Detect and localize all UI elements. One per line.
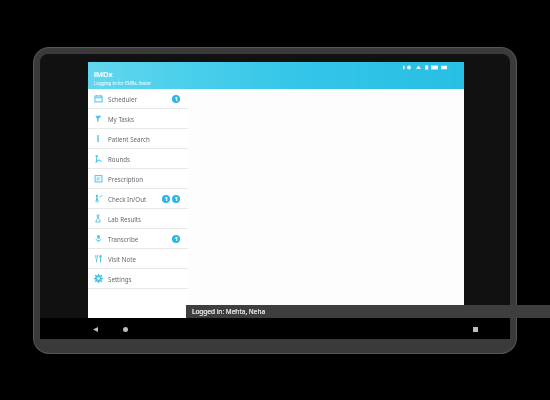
- staticText: Logged in: Mehta, Neha: [192, 307, 266, 316]
- staticText: 1: [175, 196, 178, 203]
- button[interactable]: Visit Note: [88, 249, 188, 268]
- button[interactable]: Recent apps: [468, 322, 482, 336]
- staticText: iMDx: [94, 69, 113, 79]
- staticText: My Tasks: [108, 115, 135, 123]
- staticText: 1: [175, 96, 178, 103]
- button[interactable]: Transcribe: [88, 229, 188, 248]
- button[interactable]: Back: [88, 322, 102, 336]
- button[interactable]: Lab Results: [88, 209, 188, 228]
- staticText: Logging in for EMRs, faster: [94, 80, 152, 86]
- button[interactable]: Rounds: [88, 149, 188, 168]
- staticText: Prescription: [108, 175, 143, 183]
- button[interactable]: My Tasks: [88, 109, 188, 128]
- staticText: Rounds: [108, 155, 131, 163]
- staticText: Transcribe: [108, 235, 139, 243]
- staticText: Scheduler: [108, 95, 137, 103]
- staticText: 1: [175, 236, 178, 243]
- staticText: Visit Note: [108, 255, 136, 263]
- button[interactable]: Prescription: [88, 169, 188, 188]
- button[interactable]: Check In/Out: [88, 189, 188, 208]
- button[interactable]: Settings: [88, 269, 188, 288]
- button[interactable]: Home: [118, 322, 132, 336]
- staticText: Settings: [108, 275, 132, 283]
- staticText: Lab Results: [108, 215, 142, 223]
- button[interactable]: Scheduler: [88, 89, 188, 108]
- button[interactable]: Patient Search: [88, 129, 188, 148]
- staticText: Patient Search: [108, 135, 150, 143]
- staticText: Check In/Out: [108, 195, 147, 203]
- staticText: 1: [165, 196, 168, 203]
